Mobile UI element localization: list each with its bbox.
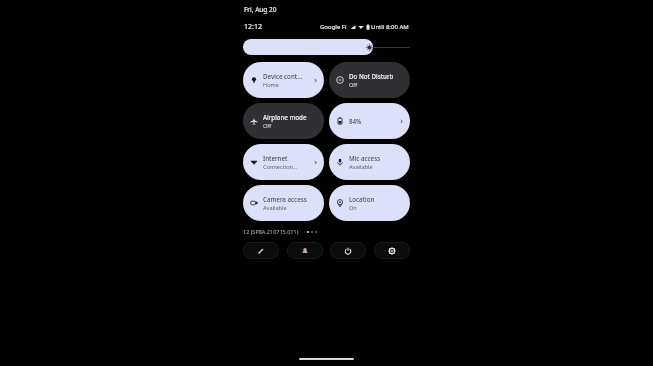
staticText: Off <box>263 122 272 130</box>
staticText: Off <box>349 81 358 89</box>
staticText: Until 8:00 AM <box>371 23 409 31</box>
staticText: Device cont… <box>263 72 303 80</box>
button[interactable]: Edit tiles <box>243 242 279 259</box>
button[interactable]: User <box>287 242 323 259</box>
button[interactable]: Device cont… <box>243 62 324 98</box>
staticText: On <box>349 204 357 212</box>
button[interactable]: Location <box>329 185 410 221</box>
staticText: Location <box>349 195 375 203</box>
staticText: Available <box>263 204 287 212</box>
button[interactable]: Power <box>330 242 366 259</box>
staticText: 12 (SP8A.210715.011) <box>243 228 299 235</box>
button[interactable]: Camera access <box>243 185 324 221</box>
staticText: Fri, Aug 20 <box>244 5 277 14</box>
staticText: Internet <box>263 154 288 162</box>
staticText: 12:12 <box>244 22 262 32</box>
button[interactable]: Airplane mode <box>243 103 324 139</box>
staticText: Home <box>263 81 279 89</box>
button[interactable]: Brightness <box>243 39 410 55</box>
staticText: Mic access <box>349 154 381 162</box>
button[interactable]: Mic access <box>329 144 410 180</box>
button[interactable]: Internet <box>243 144 324 180</box>
button[interactable]: 84% <box>329 103 410 139</box>
staticText: 84% <box>349 117 362 125</box>
staticText: Do Not Disturb <box>349 72 394 80</box>
staticText: Google Fi <box>320 23 347 31</box>
staticText: Connection… <box>263 163 298 171</box>
button[interactable]: Do Not Disturb <box>329 62 410 98</box>
staticText: Airplane mode <box>263 113 307 121</box>
staticText: Camera access <box>263 195 307 203</box>
staticText: Available <box>349 163 373 171</box>
button[interactable]: Settings <box>374 242 410 259</box>
